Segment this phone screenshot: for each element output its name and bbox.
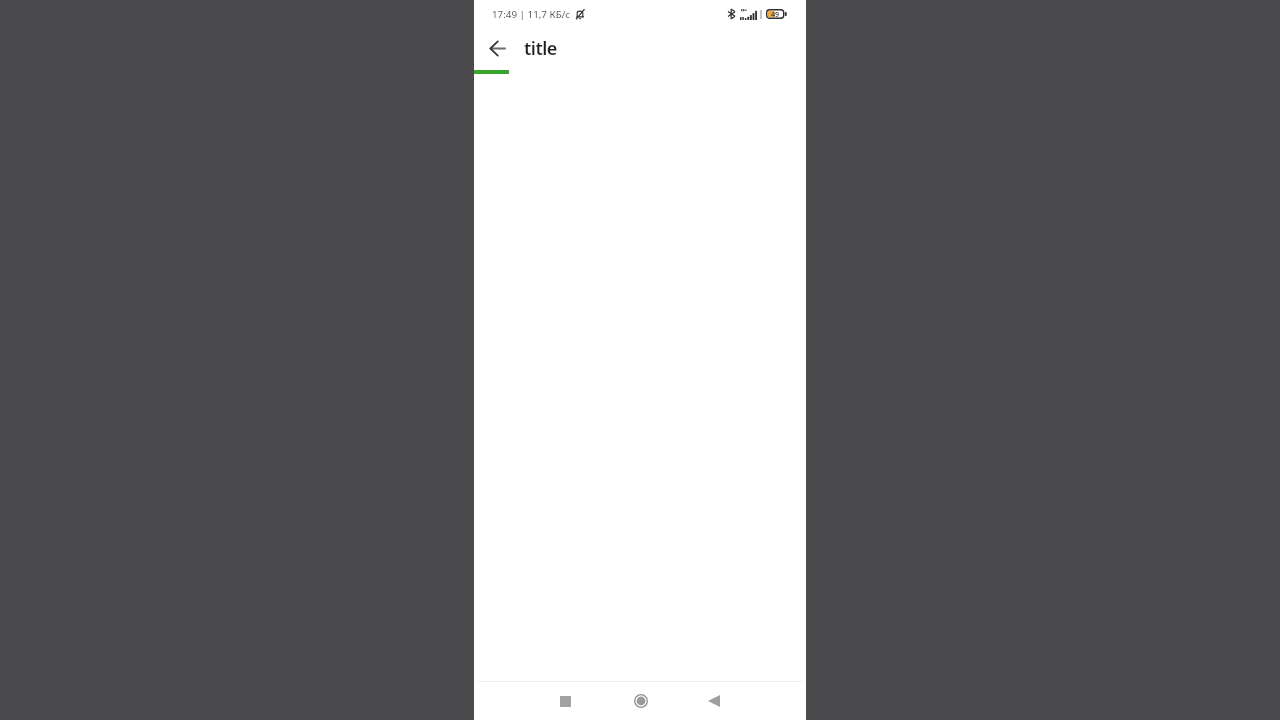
staticText: 17:49 | 11,7 КБ/с: [492, 8, 571, 21]
button[interactable]: [528, 682, 603, 720]
staticText: 49: [771, 9, 780, 19]
button[interactable]: [477, 28, 517, 68]
staticText: title: [524, 36, 557, 61]
button[interactable]: [678, 682, 753, 720]
button[interactable]: [603, 682, 678, 720]
